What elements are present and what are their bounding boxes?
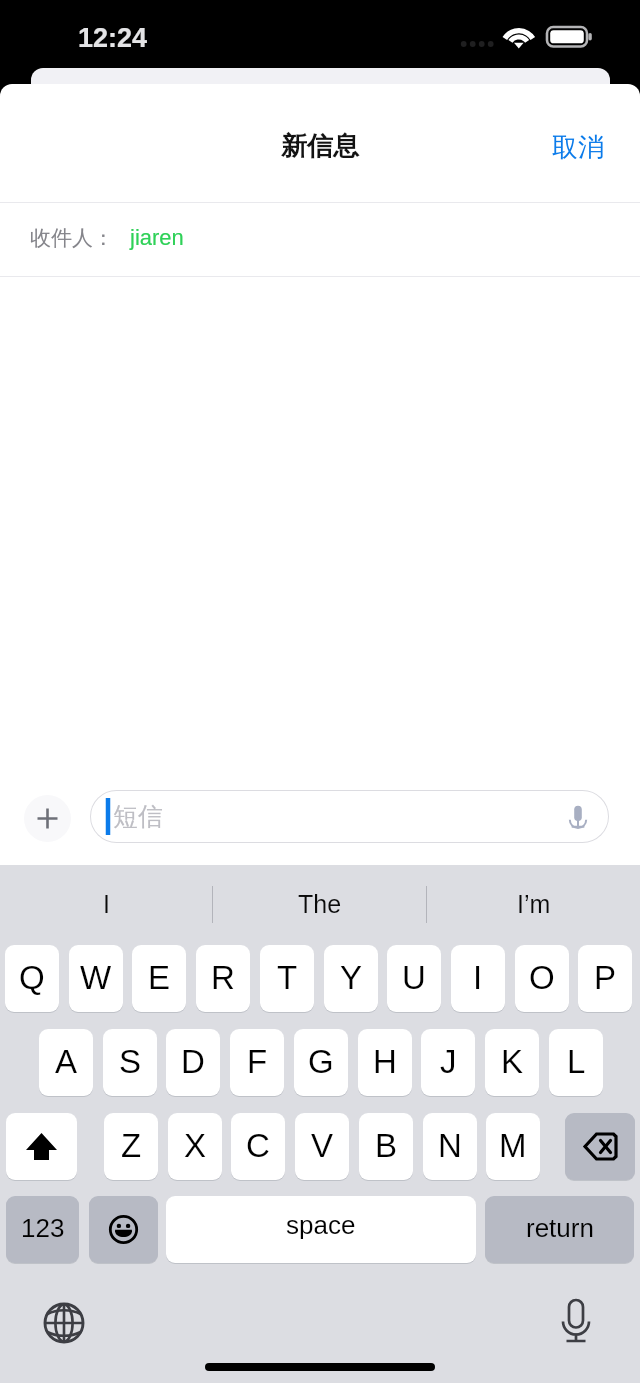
staticText: space — [286, 1210, 356, 1239]
staticText: S — [119, 1043, 142, 1080]
staticText: V — [311, 1127, 334, 1164]
staticText: K — [501, 1043, 524, 1080]
button[interactable]: Shift — [6, 1113, 77, 1180]
button[interactable]: 123 — [6, 1196, 79, 1263]
staticText: Q — [19, 959, 45, 996]
button[interactable]: Backspace — [565, 1113, 635, 1180]
staticText: 短信 — [113, 801, 163, 832]
staticText: H — [373, 1043, 397, 1080]
button[interactable]: V — [295, 1113, 349, 1180]
button[interactable]: The — [213, 865, 426, 943]
button[interactable]: X — [168, 1113, 222, 1180]
staticText: I’m — [517, 890, 551, 918]
button[interactable]: space — [166, 1196, 476, 1263]
button[interactable]: D — [166, 1029, 220, 1096]
button[interactable]: P — [578, 945, 632, 1012]
button[interactable]: G — [294, 1029, 348, 1096]
button[interactable]: 取消 — [542, 123, 614, 172]
button[interactable]: L — [549, 1029, 603, 1096]
button[interactable]: 收件人： — [0, 203, 640, 276]
button[interactable]: B — [359, 1113, 413, 1180]
staticText: Z — [121, 1127, 142, 1164]
button[interactable]: K — [485, 1029, 539, 1096]
staticText: 收件人： — [30, 225, 114, 251]
staticText: O — [529, 959, 555, 996]
staticText: C — [246, 1127, 270, 1164]
staticText: N — [438, 1127, 462, 1164]
button[interactable]: Add attachment — [24, 795, 71, 842]
staticText: E — [148, 959, 171, 996]
staticText: U — [402, 959, 426, 996]
button[interactable]: O — [515, 945, 569, 1012]
button[interactable]: N — [423, 1113, 477, 1180]
staticText: R — [211, 959, 235, 996]
staticText: Y — [340, 959, 363, 996]
button[interactable]: I — [0, 865, 212, 943]
button[interactable]: F — [230, 1029, 284, 1096]
button[interactable]: return — [485, 1196, 634, 1263]
staticText: J — [440, 1043, 457, 1080]
staticText: The — [298, 890, 342, 918]
button[interactable]: C — [231, 1113, 285, 1180]
staticText: A — [55, 1043, 78, 1080]
button[interactable]: Dictation — [552, 1297, 600, 1345]
staticText: M — [499, 1127, 527, 1164]
button[interactable]: E — [132, 945, 186, 1012]
staticText: 新信息 — [281, 130, 359, 163]
button[interactable]: Q — [5, 945, 59, 1012]
staticText: P — [594, 959, 617, 996]
button[interactable]: I’m — [427, 865, 640, 943]
button[interactable]: T — [260, 945, 314, 1012]
button[interactable]: W — [69, 945, 123, 1012]
staticText: T — [277, 959, 298, 996]
staticText: W — [80, 959, 112, 996]
staticText: 12:24 — [78, 23, 148, 53]
staticText: X — [184, 1127, 207, 1164]
button[interactable]: Y — [324, 945, 378, 1012]
button[interactable]: H — [358, 1029, 412, 1096]
staticText: D — [181, 1043, 205, 1080]
button[interactable]: R — [196, 945, 250, 1012]
button[interactable]: I — [451, 945, 505, 1012]
button[interactable]: S — [103, 1029, 157, 1096]
staticText: I — [473, 959, 483, 996]
button[interactable]: Emoji keyboard — [89, 1196, 158, 1263]
staticText: 取消 — [552, 131, 604, 164]
button[interactable]: 短信 — [90, 790, 609, 843]
button[interactable]: Change keyboard — [40, 1299, 88, 1347]
staticText: I — [103, 890, 110, 918]
button[interactable]: Z — [104, 1113, 158, 1180]
staticText: return — [526, 1213, 594, 1242]
staticText: G — [308, 1043, 334, 1080]
button[interactable]: M — [486, 1113, 540, 1180]
staticText: L — [567, 1043, 586, 1080]
staticText: F — [247, 1043, 268, 1080]
button[interactable]: J — [421, 1029, 475, 1096]
staticText: 123 — [21, 1213, 65, 1242]
button[interactable]: A — [39, 1029, 93, 1096]
staticText: jiaren — [130, 225, 184, 250]
staticText: B — [375, 1127, 398, 1164]
button[interactable]: U — [387, 945, 441, 1012]
